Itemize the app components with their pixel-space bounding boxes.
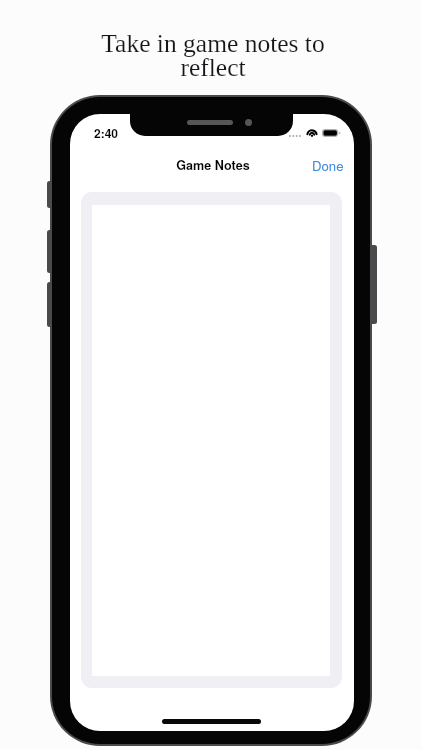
staticText: 2:40 xyxy=(94,124,119,141)
staticText: Done xyxy=(312,156,344,175)
button[interactable]: Done xyxy=(303,148,353,183)
staticText: Game Notes xyxy=(71,156,354,174)
button[interactable] xyxy=(81,192,342,688)
staticText: Take in game notes to reflect xyxy=(2,29,422,82)
